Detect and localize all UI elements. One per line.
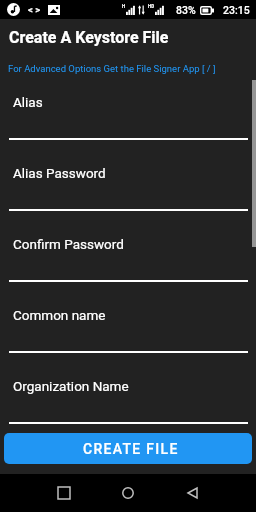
button[interactable]: Recent apps (42, 474, 86, 512)
button[interactable]: Common name (0, 291, 256, 351)
staticText: 23:15 (223, 4, 250, 16)
staticText: Alias Password (13, 165, 106, 181)
staticText: Create A Keystore File (9, 28, 169, 47)
staticText: Common name (13, 307, 106, 323)
button[interactable]: Back (170, 474, 214, 512)
staticText: Organization Name (13, 378, 129, 394)
staticText: < > (28, 4, 41, 15)
button[interactable]: Organization Name (0, 362, 256, 422)
button[interactable]: For Advanced Options Get the File Signer… (0, 59, 256, 77)
staticText: H (122, 4, 126, 9)
staticText: HD (148, 4, 155, 9)
button[interactable]: Confirm Password (0, 220, 256, 280)
staticText: 83% (176, 4, 196, 16)
staticText: For Advanced Options Get the File Signer… (8, 63, 216, 74)
button[interactable]: Alias Password (0, 149, 256, 209)
staticText: CREATE FILE (83, 441, 179, 457)
staticText: Alias (13, 94, 43, 110)
button[interactable]: Alias (0, 78, 256, 138)
button[interactable]: Home (106, 474, 150, 512)
button[interactable]: CREATE FILE (4, 433, 252, 464)
staticText: Confirm Password (13, 236, 124, 252)
